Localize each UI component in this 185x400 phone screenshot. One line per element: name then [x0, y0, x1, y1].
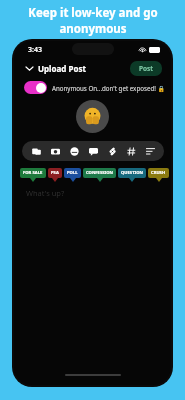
staticText: Anonymous On...don't get exposed! 🔒	[52, 84, 166, 92]
button[interactable]: Anonymous toggle	[24, 81, 47, 94]
button[interactable]: CRUSH	[148, 168, 169, 182]
button[interactable]: Camera	[49, 145, 61, 157]
staticText: POLL	[67, 170, 78, 176]
staticText: Post	[139, 64, 153, 73]
button[interactable]: Avatar	[76, 100, 109, 133]
staticText: Upload Post	[38, 63, 86, 74]
button[interactable]: Collapse	[23, 62, 35, 74]
button[interactable]: CONFESSION	[83, 168, 116, 182]
staticText: What's up?	[26, 188, 65, 198]
staticText: FOR SALE	[23, 170, 43, 176]
staticText: PSA	[51, 170, 59, 176]
button[interactable]: PSA	[48, 168, 62, 182]
button[interactable]: Gallery	[30, 145, 42, 157]
staticText: 3:43	[28, 45, 42, 55]
button[interactable]: Attach	[106, 145, 118, 157]
button[interactable]: List	[144, 145, 156, 157]
button[interactable]: Comment	[87, 145, 99, 157]
button[interactable]: FOR SALE	[20, 168, 46, 182]
button[interactable]: Post	[130, 61, 162, 76]
staticText: CRUSH	[151, 170, 166, 176]
staticText: Keep it low-key and go	[28, 5, 158, 21]
button[interactable]: Emoji	[68, 145, 80, 157]
button[interactable]: QUESTION	[118, 168, 146, 182]
staticText: anonymous	[59, 21, 127, 37]
button[interactable]: Hashtag	[125, 145, 137, 157]
button[interactable]: POLL	[64, 168, 81, 182]
staticText: QUESTION	[121, 170, 143, 176]
staticText: CONFESSION	[86, 170, 113, 176]
